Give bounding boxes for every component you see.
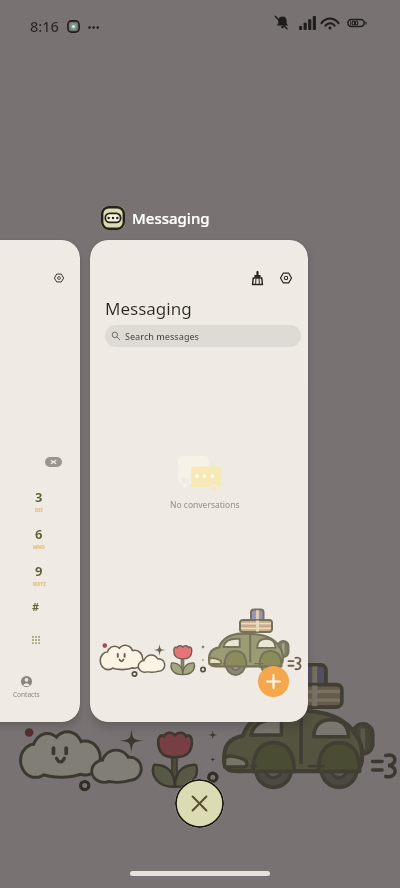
button[interactable]: Hash xyxy=(26,596,46,616)
button[interactable]: Dialer settings xyxy=(48,267,69,288)
button[interactable]: Clear all xyxy=(175,779,224,828)
button[interactable]: Backspace xyxy=(45,457,62,467)
button[interactable]: 3 xyxy=(28,488,50,513)
staticText: Search messages xyxy=(125,330,199,342)
staticText: No conversations xyxy=(170,499,240,511)
staticText: MNO xyxy=(33,544,45,550)
button[interactable]: Dialer settings xyxy=(0,240,80,722)
staticText: 9 xyxy=(35,562,43,580)
staticText: # xyxy=(32,599,40,614)
button[interactable]: Contacts xyxy=(12,676,40,699)
staticText: 3 xyxy=(35,488,43,506)
button[interactable]: 6 xyxy=(28,525,50,550)
staticText: DEF xyxy=(35,507,44,513)
button[interactable]: Clean up xyxy=(90,240,308,722)
button[interactable]: New conversation xyxy=(258,666,289,697)
staticText: WXYZ xyxy=(33,581,46,587)
button[interactable]: 9 xyxy=(28,562,50,587)
staticText: Messaging xyxy=(132,208,210,228)
staticText: 6 xyxy=(35,525,43,543)
staticText: 8:16 xyxy=(30,16,59,36)
staticText: Contacts xyxy=(13,690,40,699)
button[interactable]: Keypad xyxy=(28,632,44,648)
button[interactable]: Search messages xyxy=(105,325,301,347)
staticText: Messaging xyxy=(105,297,192,320)
button[interactable]: Clean up xyxy=(246,266,269,289)
button[interactable]: Settings xyxy=(274,266,297,289)
